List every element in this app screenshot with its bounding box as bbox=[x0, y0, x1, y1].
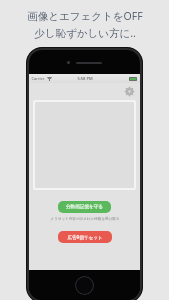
staticText: 5:58 PM bbox=[77, 76, 93, 81]
button[interactable]: Settings bbox=[124, 86, 135, 97]
staticText: 広告9個リセット bbox=[67, 234, 103, 240]
staticText: 少し恥ずかしい方に.. bbox=[34, 26, 136, 40]
button[interactable]: Home bbox=[75, 276, 94, 295]
staticText: 分動画記憶を守る bbox=[66, 204, 103, 210]
button[interactable]: 広告9個リセット bbox=[58, 231, 112, 243]
button[interactable]: 分動画記憶を守る bbox=[58, 201, 111, 213]
staticText: 画像とエフェクトをOFF bbox=[27, 9, 143, 23]
staticText: Carrier bbox=[31, 76, 45, 81]
staticText: メリセット内容が記された情報を受け取る bbox=[50, 217, 120, 222]
